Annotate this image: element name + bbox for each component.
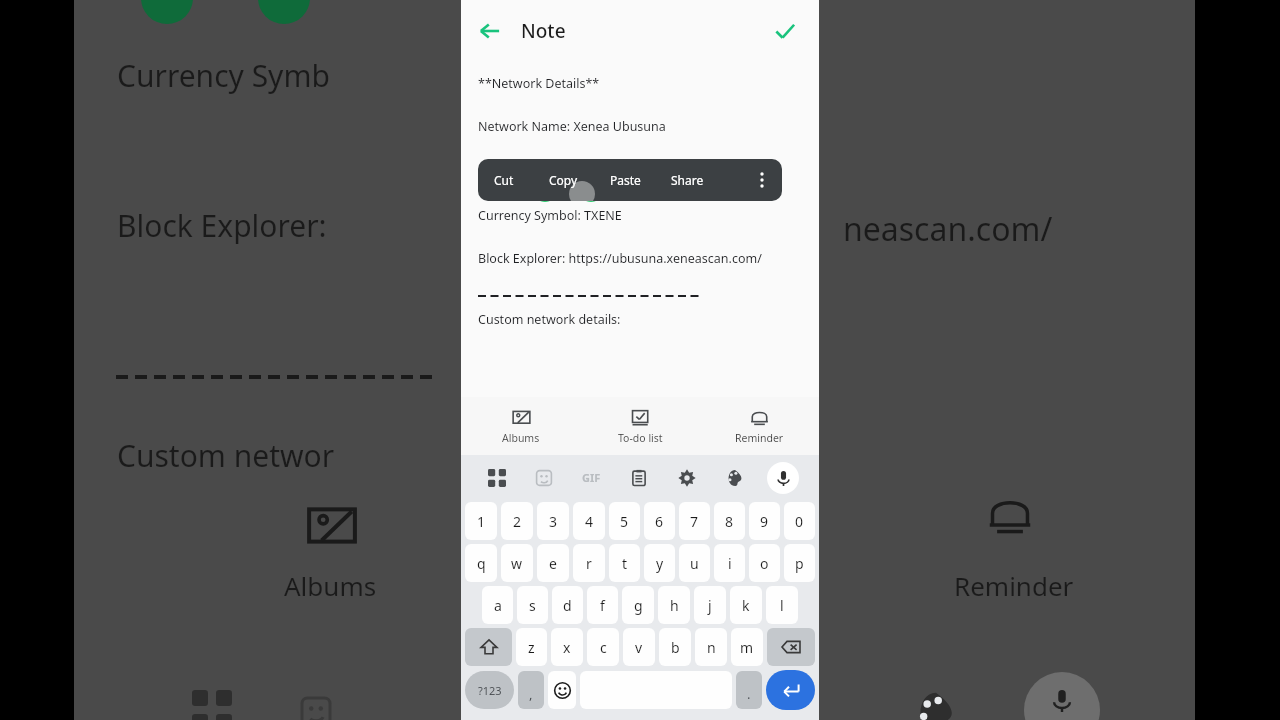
button[interactable]: f — [587, 586, 618, 624]
button[interactable]: v — [623, 628, 655, 666]
button[interactable]: Themes — [711, 455, 759, 500]
button[interactable]: q — [465, 544, 497, 582]
button[interactable]: x — [551, 628, 583, 666]
staticText: 7 — [690, 512, 699, 531]
staticText: Currency Symb — [117, 55, 330, 96]
staticText: 4 — [585, 512, 594, 531]
button[interactable]: Voice input — [767, 462, 799, 494]
button[interactable]: s — [517, 586, 548, 624]
button[interactable]: Shift — [465, 628, 512, 666]
staticText: m — [740, 638, 754, 657]
button[interactable]: Back — [467, 8, 513, 54]
button[interactable]: n — [695, 628, 727, 666]
button[interactable]: Clipboard — [615, 455, 663, 500]
staticText: r — [586, 554, 592, 573]
button[interactable]: y — [644, 544, 675, 582]
button[interactable]: 4 — [573, 502, 605, 540]
staticText: 2 — [513, 512, 522, 531]
button[interactable]: 1 — [465, 502, 497, 540]
button[interactable]: 8 — [714, 502, 745, 540]
staticText: f — [600, 596, 605, 615]
button[interactable]: 7 — [679, 502, 710, 540]
staticText: Currency Symbol: TXENE — [478, 207, 622, 224]
button[interactable]: Settings — [663, 455, 711, 500]
button[interactable]: . — [736, 671, 762, 709]
staticText: p — [795, 554, 804, 573]
button[interactable]: Paste — [594, 159, 656, 201]
button[interactable]: Reminder — [700, 397, 819, 455]
staticText: 6 — [655, 512, 664, 531]
button[interactable]: Emoji — [548, 671, 576, 709]
button[interactable]: 9 — [749, 502, 780, 540]
staticText: t — [622, 554, 628, 573]
staticText: v — [635, 638, 643, 657]
button[interactable]: Backspace — [767, 628, 815, 666]
button[interactable]: Enter — [766, 670, 815, 710]
button[interactable]: w — [501, 544, 533, 582]
staticText: Network Name: Xenea Ubusuna — [478, 118, 666, 135]
button[interactable]: b — [659, 628, 691, 666]
staticText: GIF — [582, 470, 601, 485]
button[interactable]: Stickers — [520, 455, 567, 500]
staticText: h — [670, 596, 679, 615]
staticText: Block Explorer: — [117, 205, 327, 246]
button[interactable]: h — [658, 586, 690, 624]
staticText: q — [477, 554, 486, 573]
button[interactable]: u — [679, 544, 710, 582]
button[interactable]: ?123 — [465, 671, 514, 709]
button[interactable]: t — [609, 544, 640, 582]
staticText: i — [728, 554, 732, 573]
button[interactable]: d — [552, 586, 583, 624]
button[interactable]: , — [518, 671, 544, 709]
button[interactable]: p — [784, 544, 815, 582]
staticText: **Network Details** — [478, 75, 600, 92]
staticText: u — [690, 554, 699, 573]
staticText: Albums — [284, 568, 377, 603]
button[interactable]: g — [622, 586, 654, 624]
staticText: j — [708, 596, 712, 615]
staticText: Custom network details: — [478, 311, 621, 328]
staticText: z — [528, 638, 535, 657]
button[interactable]: Share — [656, 159, 718, 201]
button[interactable]: k — [730, 586, 762, 624]
button[interactable]: e — [537, 544, 569, 582]
button[interactable]: Copy — [532, 159, 594, 201]
button[interactable]: i — [714, 544, 745, 582]
button[interactable]: Save — [763, 9, 807, 53]
staticText: n — [707, 638, 716, 657]
button[interactable]: m — [731, 628, 763, 666]
staticText: Reminder — [954, 568, 1074, 603]
staticText: , — [529, 685, 533, 703]
button[interactable]: More options — [742, 159, 782, 201]
button[interactable]: a — [482, 586, 513, 624]
button[interactable]: 0 — [784, 502, 815, 540]
button[interactable]: Apps — [473, 455, 520, 500]
button[interactable]: 5 — [609, 502, 640, 540]
staticText: Chain ID: — [478, 161, 535, 178]
staticText: Paste — [610, 172, 641, 188]
button[interactable]: 6 — [644, 502, 675, 540]
button[interactable]: Cut — [478, 159, 530, 201]
button[interactable]: Albums — [461, 397, 581, 455]
staticText: y — [656, 554, 664, 573]
staticText: Share — [671, 172, 704, 188]
staticText: Copy — [549, 172, 578, 188]
button[interactable]: z — [516, 628, 547, 666]
staticText: Albums — [502, 431, 540, 445]
button[interactable]: r — [573, 544, 605, 582]
button[interactable]: c — [587, 628, 619, 666]
staticText: Custom networ — [117, 435, 335, 476]
button[interactable]: l — [766, 586, 798, 624]
button[interactable]: GIF — [567, 455, 615, 500]
button[interactable]: o — [749, 544, 780, 582]
staticText: Cut — [494, 172, 514, 188]
button[interactable]: 3 — [537, 502, 569, 540]
staticText: c — [600, 638, 607, 657]
button[interactable]: 2 — [501, 502, 533, 540]
staticText: x — [563, 638, 571, 657]
button[interactable]: To-do list — [581, 397, 700, 455]
staticText: 1096 — [536, 161, 565, 178]
button[interactable]: j — [694, 586, 726, 624]
staticText: ?123 — [478, 683, 502, 698]
